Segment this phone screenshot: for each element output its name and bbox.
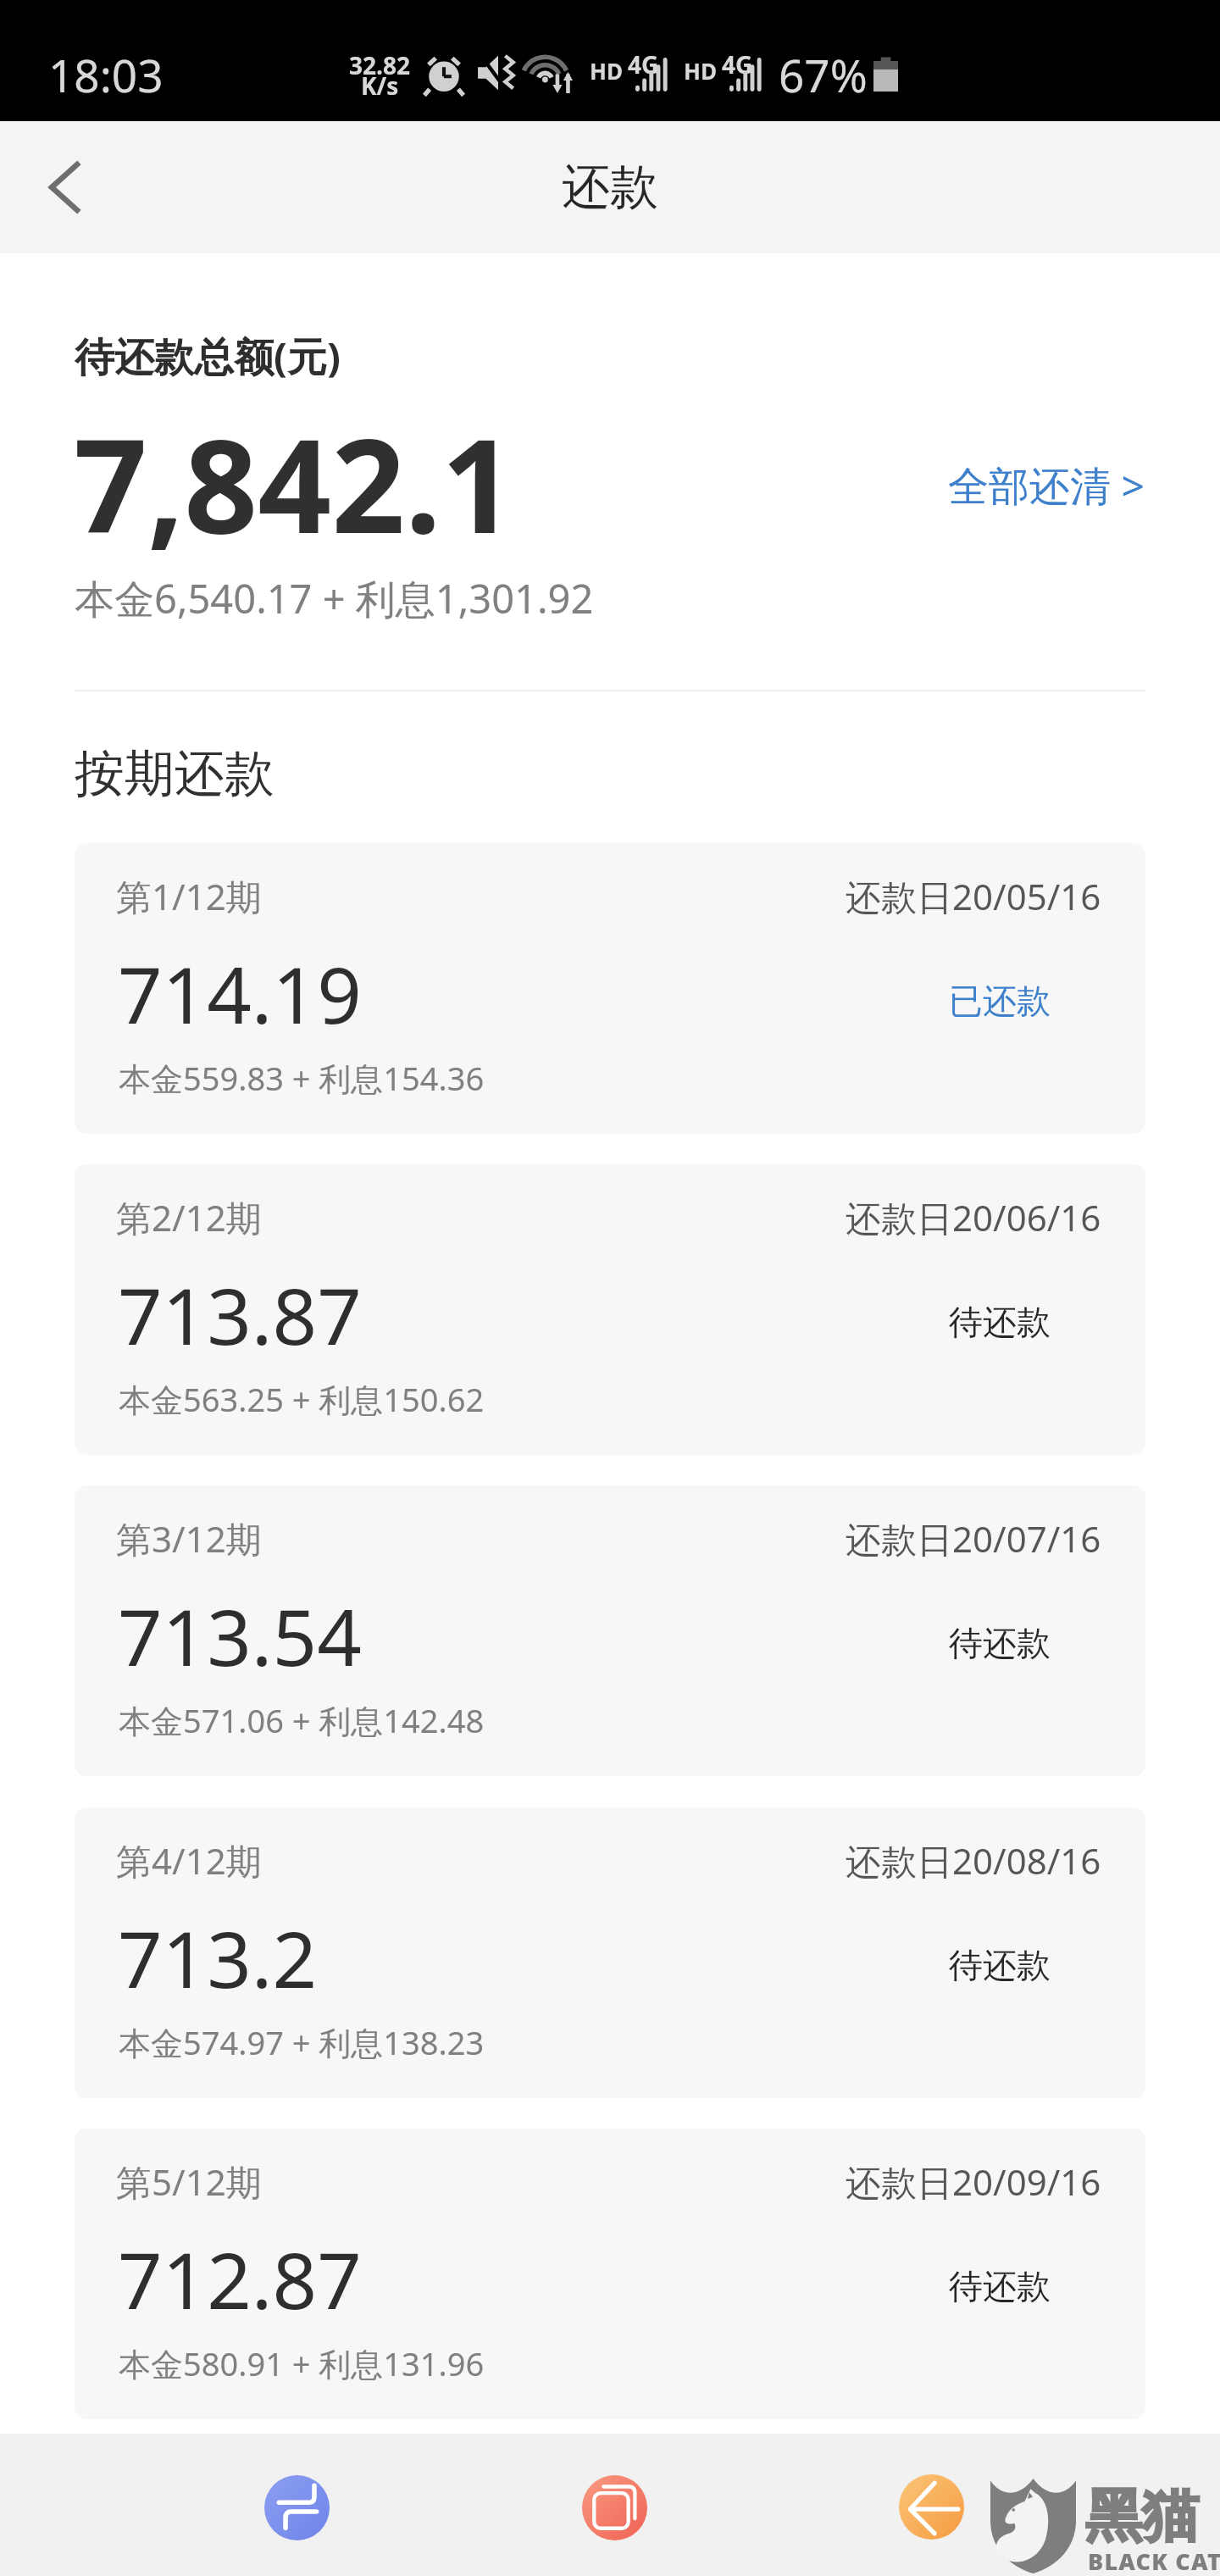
staticText: 已还款	[949, 980, 1051, 1022]
staticText: 7,842.1	[74, 396, 515, 571]
staticText: BLACK CAT	[1088, 2545, 1220, 2576]
staticText: 第3/12期	[116, 1514, 262, 1563]
staticText: 本金563.25 + 利息150.62	[119, 1377, 485, 1421]
staticText: 待还款	[949, 1944, 1051, 1986]
staticText: 黑猫	[1085, 2480, 1199, 2551]
button[interactable]: Back	[867, 2442, 995, 2571]
button[interactable]: Recents	[550, 2443, 679, 2572]
button[interactable]: 第5/12期	[75, 2129, 1145, 2419]
button[interactable]: 全部还清 >	[928, 445, 1167, 526]
staticText: 待还款总额(元)	[75, 329, 341, 383]
button[interactable]: Back	[0, 121, 132, 253]
staticText: 本金571.06 + 利息142.48	[119, 1698, 485, 1742]
staticText: 第1/12期	[116, 872, 262, 920]
staticText: 18:03	[48, 44, 164, 105]
staticText: 713.54	[118, 1583, 362, 1689]
staticText: 713.87	[118, 1262, 362, 1368]
staticText: 第5/12期	[116, 2157, 262, 2206]
staticText: 本金559.83 + 利息154.36	[119, 1056, 485, 1100]
staticText: 本金6,540.17 + 利息1,301.92	[75, 571, 594, 625]
staticText: 全部还清 >	[948, 458, 1145, 514]
staticText: HD	[590, 56, 623, 86]
staticText: 待还款	[949, 1301, 1051, 1343]
staticText: 还款日20/07/16	[846, 1514, 1101, 1563]
staticText: 713.2	[118, 1905, 318, 2011]
staticText: 本金580.91 + 利息131.96	[119, 2341, 485, 2385]
staticText: 还款日20/06/16	[846, 1193, 1101, 1241]
staticText: 还款日20/09/16	[846, 2157, 1101, 2206]
staticText: 待还款	[949, 1622, 1051, 1664]
button[interactable]: 第3/12期	[75, 1485, 1145, 1776]
staticText: 32.82	[349, 49, 410, 81]
staticText: 还款日20/05/16	[846, 872, 1101, 920]
button[interactable]: 第2/12期	[75, 1164, 1145, 1455]
staticText: 4G	[628, 48, 659, 80]
staticText: 714.19	[118, 941, 362, 1046]
button[interactable]: 第4/12期	[75, 1807, 1145, 2098]
staticText: 本金574.97 + 利息138.23	[119, 2020, 485, 2064]
staticText: HD	[684, 56, 717, 86]
staticText: 712.87	[118, 2226, 362, 2332]
staticText: 还款日20/08/16	[846, 1836, 1101, 1885]
staticText: 4G	[722, 48, 753, 80]
staticText: 67%	[779, 44, 868, 105]
staticText: 待还款	[949, 2265, 1051, 2307]
staticText: 第4/12期	[116, 1836, 262, 1885]
staticText: 还款	[562, 157, 658, 218]
staticText: 第2/12期	[116, 1193, 262, 1241]
staticText: K/s	[361, 69, 399, 102]
staticText: 按期还款	[75, 742, 274, 805]
button[interactable]: 第1/12期	[75, 843, 1145, 1134]
button[interactable]: Switch	[232, 2443, 361, 2572]
